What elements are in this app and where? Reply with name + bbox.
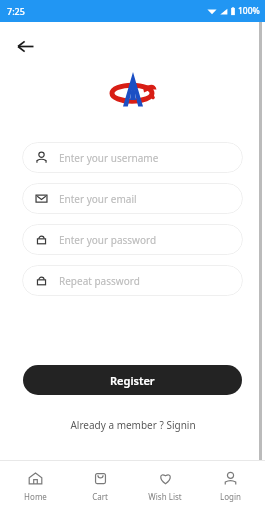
staticText: Enter your username [59, 151, 159, 165]
button[interactable]: Login [200, 467, 260, 506]
button[interactable]: Enter your email [22, 183, 243, 214]
staticText: Register [110, 373, 155, 388]
button[interactable]: Enter your username [22, 142, 243, 173]
staticText: 100% [238, 5, 260, 17]
button[interactable]: Home [5, 467, 65, 506]
staticText: Enter your password [59, 233, 157, 247]
button[interactable]: Register [23, 365, 242, 395]
button[interactable]: Back [10, 31, 40, 61]
staticText: Login [220, 491, 241, 502]
button[interactable]: Repeat password [22, 265, 243, 296]
staticText: Cart [92, 491, 108, 502]
button[interactable]: Wish List [135, 467, 195, 506]
button[interactable]: Already a member ? Signin [0, 418, 265, 432]
button[interactable]: Cart [70, 467, 130, 506]
staticText: Home [24, 491, 47, 502]
staticText: Already a member ? Signin [70, 418, 196, 432]
staticText: Repeat password [59, 274, 140, 288]
staticText: 7:25 [7, 5, 25, 17]
staticText: Wish List [148, 491, 182, 502]
button[interactable]: Enter your password [22, 224, 243, 255]
staticText: Enter your email [59, 192, 137, 206]
